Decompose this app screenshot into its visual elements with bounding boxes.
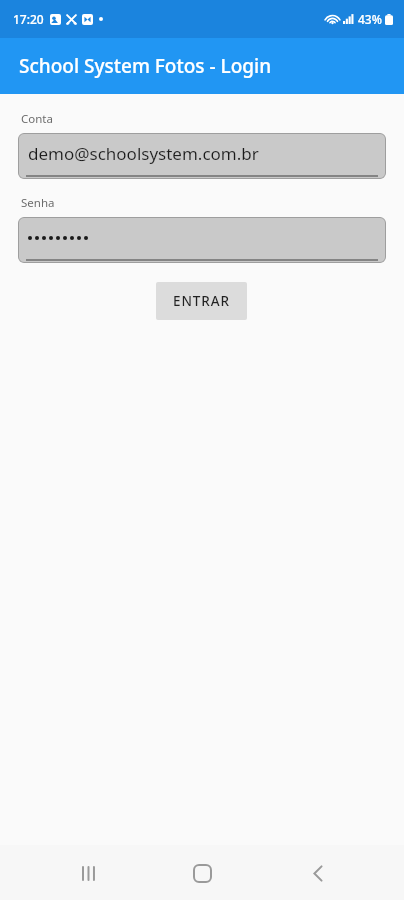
staticText: School System Fotos - Login [19,53,272,79]
staticText: Senha [21,195,55,211]
button[interactable]: Back [296,851,340,895]
staticText: 17:20 [13,11,44,27]
staticText: Conta [21,111,53,127]
staticText: demo@schoolsystem.com.br [28,142,259,165]
button[interactable]: Recents [68,851,112,895]
button[interactable] [18,217,386,263]
staticText: 43% [358,11,382,27]
button[interactable]: Home [180,851,224,895]
button[interactable]: ENTRAR [156,282,247,320]
button[interactable]: demo@schoolsystem.com.br [18,133,386,179]
staticText: ENTRAR [173,292,230,310]
